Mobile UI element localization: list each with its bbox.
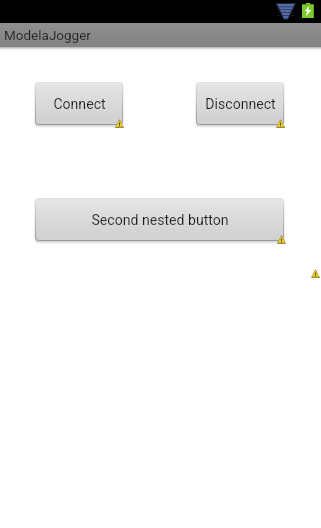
staticText: Second nested button bbox=[91, 212, 229, 229]
staticText: Disconnect bbox=[205, 96, 276, 113]
staticText: ModelaJogger bbox=[4, 27, 91, 43]
other: Battery charging bbox=[302, 3, 314, 19]
button[interactable]: Second nested button bbox=[33, 198, 286, 244]
button[interactable]: Disconnect bbox=[194, 82, 286, 128]
other: Signal strength bbox=[277, 4, 295, 19]
button[interactable]: Connect bbox=[33, 82, 125, 128]
staticText: Connect bbox=[53, 96, 106, 113]
